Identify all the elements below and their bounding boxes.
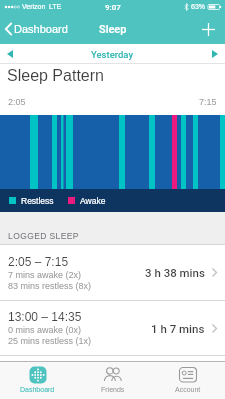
staticText: LOGGED SLEEP (8, 231, 79, 240)
staticText: Restless (21, 196, 54, 205)
staticText: 3 h 38 mins (145, 266, 205, 279)
staticText: Account (175, 386, 201, 394)
staticText: 7:15 (199, 97, 217, 107)
staticText: 1 h 7 mins (151, 322, 205, 335)
staticText: Friends (101, 386, 125, 394)
staticText: Sleep Pattern (7, 67, 104, 85)
staticText: 63% (191, 3, 206, 11)
staticText: 2:05 – 7:15 (8, 255, 69, 268)
staticText: 83 mins restless (8x) (8, 281, 92, 291)
staticText: Dashboard (20, 386, 55, 394)
staticText: 25 mins restless (1x) (8, 336, 92, 346)
staticText: 13:00 – 14:35 (8, 310, 82, 323)
staticText: 9:07 (105, 3, 121, 12)
staticText: LTE (49, 3, 62, 11)
staticText: Dashboard (14, 23, 68, 35)
staticText: 2:05 (8, 97, 26, 107)
staticText: Yesterday (91, 49, 134, 60)
staticText: Awake (80, 196, 106, 205)
staticText: Sleep (99, 23, 127, 36)
staticText: 7 mins awake (2x) (8, 270, 82, 280)
staticText: Verizon (22, 3, 46, 11)
staticText: 0 mins awake (0x) (8, 325, 82, 335)
